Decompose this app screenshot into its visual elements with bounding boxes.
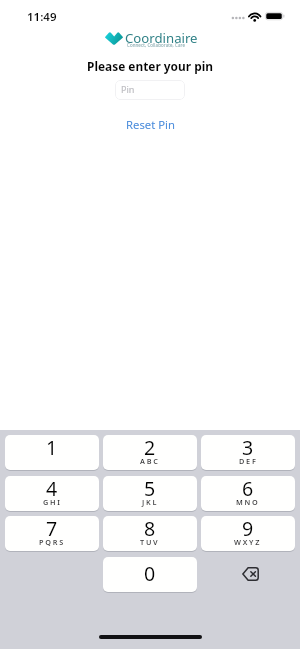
- staticText: WXYZ: [234, 537, 262, 547]
- staticText: 1: [46, 435, 58, 461]
- button[interactable]: Reset Pin: [120, 116, 181, 133]
- button[interactable]: 9: [201, 516, 295, 551]
- button[interactable]: 6: [201, 476, 295, 511]
- button[interactable]: 5: [103, 476, 197, 511]
- button[interactable]: 8: [103, 516, 197, 551]
- staticText: 3: [242, 435, 254, 461]
- staticText: 8: [144, 516, 156, 542]
- staticText: TUV: [140, 537, 160, 547]
- button[interactable]: Pin: [115, 80, 185, 100]
- staticText: GHI: [43, 497, 62, 507]
- staticText: Connect, Collaborate, Care: [127, 42, 185, 48]
- staticText: Please enter your pin: [87, 58, 213, 74]
- staticText: MNO: [236, 497, 260, 507]
- staticText: JKL: [142, 497, 159, 507]
- staticText: PQRS: [39, 537, 65, 547]
- button[interactable]: 1: [5, 435, 99, 470]
- staticText: 2: [144, 435, 156, 461]
- staticText: Coordinaire: [125, 29, 198, 47]
- button[interactable]: Backspace: [201, 557, 295, 592]
- staticText: 9: [242, 516, 254, 542]
- staticText: Reset Pin: [126, 117, 175, 132]
- staticText: 5: [144, 476, 156, 502]
- staticText: ABC: [140, 456, 160, 466]
- button[interactable]: 7: [5, 516, 99, 551]
- button[interactable]: 0: [103, 557, 197, 592]
- staticText: 4: [46, 476, 58, 502]
- staticText: 6: [242, 476, 254, 502]
- staticText: Pin: [121, 83, 135, 95]
- button[interactable]: 4: [5, 476, 99, 511]
- button[interactable]: 3: [201, 435, 295, 470]
- staticText: DEF: [239, 456, 258, 466]
- staticText: 0: [144, 560, 156, 587]
- staticText: 11:49: [27, 9, 57, 25]
- button[interactable]: 2: [103, 435, 197, 470]
- staticText: 7: [46, 516, 58, 542]
